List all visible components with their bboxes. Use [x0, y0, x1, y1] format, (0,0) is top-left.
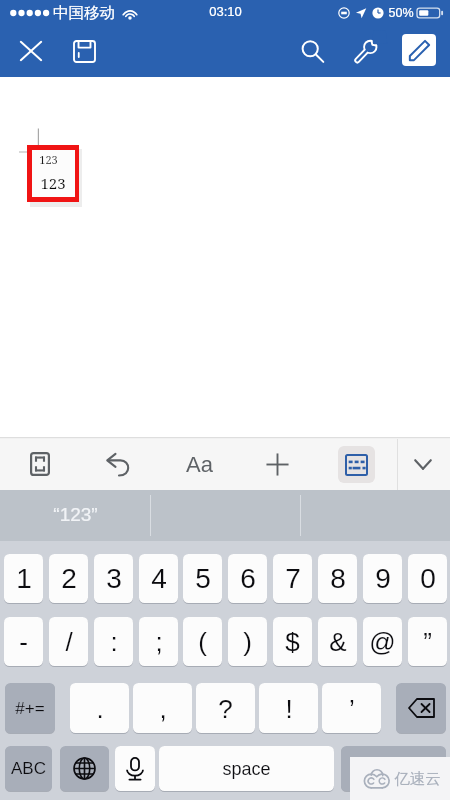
- button[interactable]: Backspace: [396, 683, 446, 733]
- staticText: $: [285, 627, 300, 656]
- button[interactable]: 0: [408, 554, 447, 603]
- button[interactable]: /: [49, 617, 88, 666]
- staticText: &: [329, 627, 347, 656]
- button[interactable]: 5: [183, 554, 222, 603]
- button[interactable]: #+=: [5, 683, 55, 733]
- staticText: 123: [40, 173, 66, 193]
- staticText: 4: [151, 563, 167, 594]
- staticText: 9: [375, 563, 391, 594]
- button[interactable]: Expand: [17, 441, 63, 487]
- staticText: @: [369, 627, 396, 656]
- button[interactable]: 3: [94, 554, 133, 603]
- staticText: 中国移动: [53, 3, 115, 23]
- button[interactable]: @: [363, 617, 402, 666]
- staticText: space: [222, 759, 271, 779]
- button[interactable]: (: [183, 617, 222, 666]
- staticText: 7: [285, 563, 301, 594]
- button[interactable]: ABC: [5, 746, 52, 791]
- button[interactable]: 1: [4, 554, 43, 603]
- button[interactable]: -: [4, 617, 43, 666]
- staticText: 123: [39, 152, 58, 167]
- button[interactable]: Close: [7, 27, 55, 75]
- staticText: 2: [61, 563, 77, 594]
- button[interactable]: Tools: [342, 27, 390, 75]
- button[interactable]: :: [94, 617, 133, 666]
- button[interactable]: .: [70, 683, 129, 733]
- staticText: 5: [195, 563, 211, 594]
- staticText: ”: [423, 627, 432, 656]
- staticText: (: [198, 627, 207, 656]
- button[interactable]: Hide keyboard: [400, 441, 446, 487]
- button[interactable]: !: [259, 683, 318, 733]
- button[interactable]: ’: [322, 683, 381, 733]
- staticText: 50%: [388, 6, 414, 20]
- button[interactable]: Undo: [95, 441, 141, 487]
- button[interactable]: ): [228, 617, 267, 666]
- button[interactable]: Save: [60, 27, 108, 75]
- button[interactable]: 7: [273, 554, 312, 603]
- staticText: ?: [218, 694, 233, 723]
- button[interactable]: 6: [228, 554, 267, 603]
- staticText: ’: [349, 694, 355, 723]
- button[interactable]: ,: [133, 683, 192, 733]
- staticText: 1: [16, 563, 32, 594]
- button[interactable]: Insert: [254, 441, 300, 487]
- button[interactable]: Search: [288, 27, 336, 75]
- staticText: 亿速云: [394, 769, 441, 789]
- button[interactable]: “123”: [0, 490, 150, 541]
- staticText: #+=: [15, 699, 45, 718]
- button[interactable]: Voice input: [115, 746, 155, 791]
- staticText: ): [243, 627, 252, 656]
- staticText: 6: [240, 563, 256, 594]
- button[interactable]: ?: [196, 683, 255, 733]
- button[interactable]: $: [273, 617, 312, 666]
- staticText: :: [110, 627, 118, 656]
- button[interactable]: ;: [139, 617, 178, 666]
- button[interactable]: &: [318, 617, 357, 666]
- button[interactable]: 9: [363, 554, 402, 603]
- staticText: 0: [420, 563, 436, 594]
- button[interactable]: Format: [176, 441, 222, 487]
- staticText: ABC: [11, 759, 46, 778]
- staticText: /: [65, 627, 73, 656]
- button[interactable]: Change language: [60, 746, 109, 791]
- button[interactable]: Edit: [402, 34, 436, 66]
- button[interactable]: ”: [408, 617, 447, 666]
- staticText: Aa: [186, 452, 213, 477]
- button[interactable]: space: [159, 746, 334, 791]
- button[interactable]: 2: [49, 554, 88, 603]
- staticText: .: [96, 694, 104, 723]
- staticText: 03:10: [209, 4, 242, 19]
- button[interactable]: Keyboard layout: [338, 446, 375, 483]
- staticText: 3: [106, 563, 122, 594]
- staticText: 8: [330, 563, 346, 594]
- button[interactable]: 8: [318, 554, 357, 603]
- staticText: !: [285, 694, 293, 723]
- staticText: “123”: [53, 504, 98, 525]
- button[interactable]: Return: [341, 746, 446, 791]
- staticText: ;: [155, 627, 163, 656]
- button[interactable]: 4: [139, 554, 178, 603]
- staticText: ,: [159, 694, 167, 723]
- staticText: -: [19, 627, 28, 656]
